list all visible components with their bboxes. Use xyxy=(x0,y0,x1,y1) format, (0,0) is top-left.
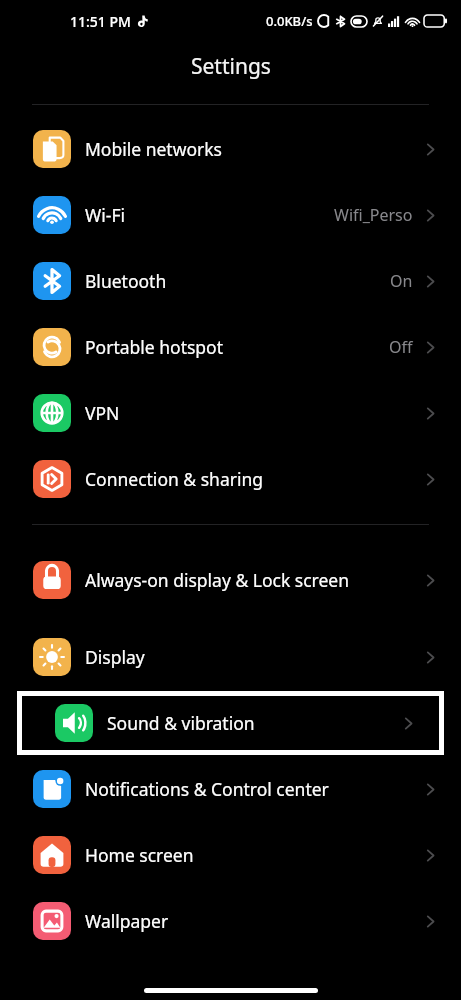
staticText: Portable hotspot xyxy=(85,335,383,359)
other: Bluetooth xyxy=(33,262,71,300)
other: Notifications and Control center xyxy=(33,770,71,808)
staticText: Mobile networks xyxy=(85,137,416,161)
staticText: Sound & vibration xyxy=(107,711,394,735)
staticText: Display xyxy=(85,645,416,669)
staticText: Always-on display & Lock screen xyxy=(85,568,416,592)
button[interactable]: Notifications and Control center xyxy=(0,756,461,822)
button[interactable]: Mobile networks xyxy=(0,116,461,182)
staticText: Wi-Fi xyxy=(85,203,328,227)
other: Connection and sharing xyxy=(33,460,71,498)
button[interactable]: Home screen xyxy=(0,822,461,888)
staticText: 11:51 PM xyxy=(70,12,131,31)
button[interactable]: Sound and vibration xyxy=(22,696,439,750)
staticText: Wifi_Perso xyxy=(334,204,413,226)
staticText: Off xyxy=(389,336,413,358)
other: Wi-Fi xyxy=(33,196,71,234)
staticText: 0.0KB/s xyxy=(266,12,313,30)
button[interactable]: Connection and sharing xyxy=(0,446,461,512)
staticText: Connection & sharing xyxy=(85,467,416,491)
other: Always-on display and Lock screen xyxy=(33,561,71,599)
button[interactable]: Display xyxy=(0,624,461,690)
button[interactable]: VPN xyxy=(0,380,461,446)
other: Home screen xyxy=(33,836,71,874)
button[interactable]: Portable hotspot xyxy=(0,314,461,380)
staticText: Home screen xyxy=(85,843,416,867)
other: Wallpaper xyxy=(33,902,71,940)
button[interactable]: Wallpaper xyxy=(0,888,461,954)
other: Sound and vibration xyxy=(55,704,93,742)
staticText: On xyxy=(390,270,413,292)
staticText: Wallpaper xyxy=(85,909,416,933)
staticText: Notifications & Control center xyxy=(85,777,416,801)
button[interactable]: Bluetooth xyxy=(0,248,461,314)
button[interactable]: Always-on display and Lock screen xyxy=(0,536,461,624)
other: Mobile networks xyxy=(33,130,71,168)
staticText: Settings xyxy=(191,52,271,81)
other: VPN xyxy=(33,394,71,432)
other: Portable hotspot xyxy=(33,328,71,366)
button[interactable]: Wi-Fi xyxy=(0,182,461,248)
other: Display xyxy=(33,638,71,676)
staticText: Bluetooth xyxy=(85,269,384,293)
staticText: VPN xyxy=(85,401,416,425)
